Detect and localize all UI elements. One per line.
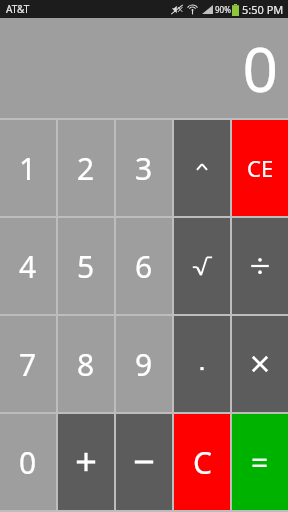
staticText: 7 — [19, 344, 37, 385]
staticText: CE — [247, 153, 274, 183]
button[interactable]: 7 — [0, 316, 56, 412]
staticText: 0 — [19, 442, 37, 483]
staticText: 4 — [19, 246, 37, 287]
button[interactable]: Minus — [116, 414, 172, 510]
staticText: 2 — [77, 148, 95, 189]
button[interactable]: 9 — [116, 316, 172, 412]
button[interactable]: Plus — [58, 414, 114, 510]
button[interactable]: C — [174, 414, 230, 510]
staticText: = — [251, 442, 269, 483]
staticText: 0 — [242, 26, 278, 110]
button[interactable]: Divide — [232, 218, 288, 314]
staticText: C — [193, 442, 212, 483]
staticText: 9 — [135, 344, 153, 385]
staticText: 1 — [19, 148, 37, 189]
staticText: 5:50 PM — [242, 2, 284, 17]
button[interactable]: 3 — [116, 120, 172, 216]
button[interactable]: 4 — [0, 218, 56, 314]
button[interactable]: Decimal point — [174, 316, 230, 412]
staticText: 6 — [135, 246, 153, 287]
button[interactable]: Square root — [174, 218, 230, 314]
staticText: 90% — [215, 4, 231, 15]
button[interactable]: = — [232, 414, 288, 510]
button[interactable]: 0 — [0, 414, 56, 510]
button[interactable]: 8 — [58, 316, 114, 412]
button[interactable]: Power — [174, 120, 230, 216]
button[interactable]: 2 — [58, 120, 114, 216]
button[interactable]: 5 — [58, 218, 114, 314]
button[interactable]: 1 — [0, 120, 56, 216]
staticText: 8 — [77, 344, 95, 385]
staticText: 5 — [77, 246, 95, 287]
button[interactable]: CE — [232, 120, 288, 216]
button[interactable]: 6 — [116, 218, 172, 314]
staticText: AT&T — [6, 2, 30, 16]
staticText: 3 — [135, 148, 153, 189]
button[interactable]: Multiply — [232, 316, 288, 412]
